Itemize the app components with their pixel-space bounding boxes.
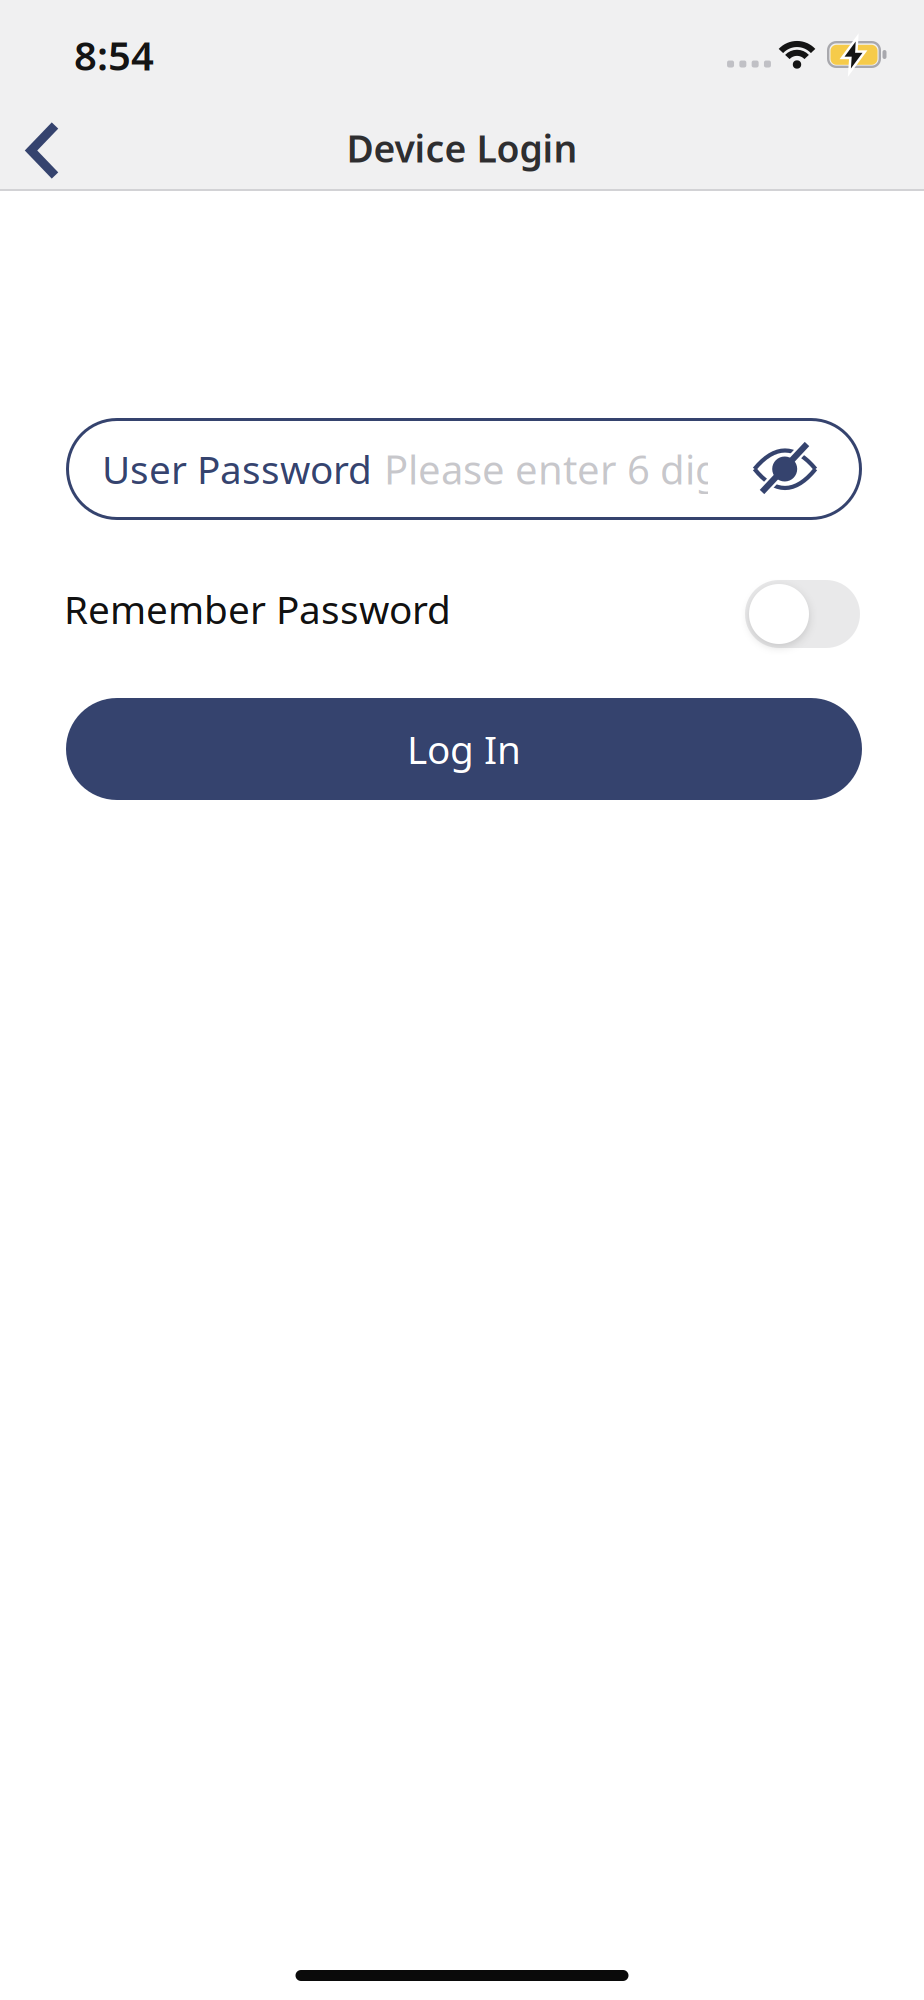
staticText: Device Login [346, 123, 577, 173]
staticText: User Password [102, 443, 372, 495]
button[interactable] [752, 440, 818, 498]
staticText: 8:54 [74, 28, 154, 81]
button[interactable] [745, 580, 860, 648]
staticText: Please enter 6 digit password [384, 442, 924, 495]
staticText: Remember Password [64, 583, 451, 635]
button[interactable] [24, 119, 62, 181]
button[interactable]: Log In [66, 698, 862, 800]
staticText: Log In [407, 723, 521, 775]
button[interactable]: User Password [66, 418, 862, 520]
